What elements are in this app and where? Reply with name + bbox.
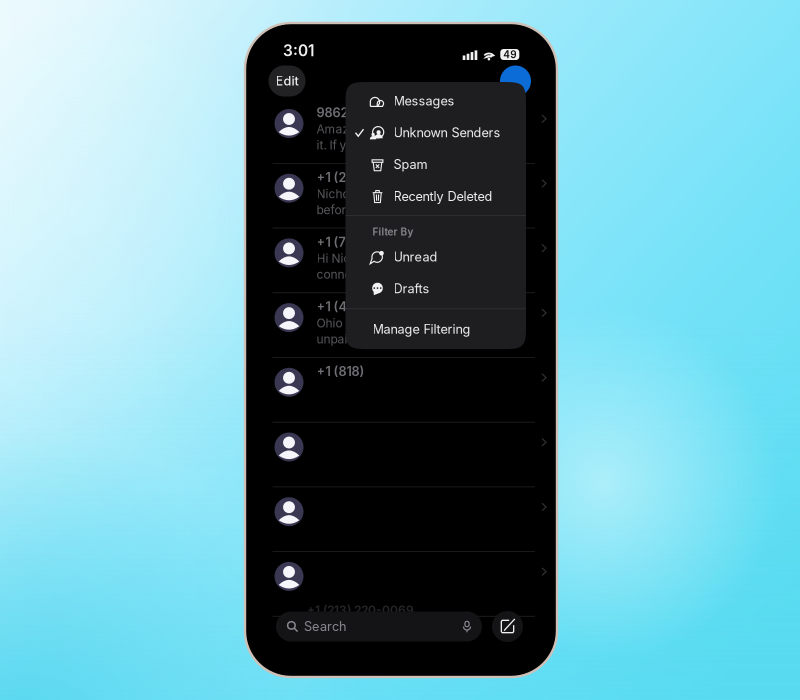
staticText: Amazon: (316, 122, 365, 136)
button[interactable]: Recently Deleted (345, 180, 526, 212)
button[interactable]: Unread (345, 241, 526, 273)
staticText: Recently Deleted (393, 189, 492, 204)
staticText: Ohio (316, 316, 342, 330)
button[interactable]: Edit (268, 65, 305, 96)
staticText: Drafts (393, 281, 429, 296)
staticText: 49 (503, 48, 516, 61)
button[interactable]: Manage Filtering (345, 309, 526, 349)
staticText: Nicholas (316, 186, 365, 201)
button[interactable] (245, 487, 557, 552)
button[interactable]: 98627 (245, 99, 557, 164)
staticText: Manage Filtering (372, 321, 470, 337)
staticText: +1 (213) (316, 170, 364, 185)
button[interactable] (245, 552, 557, 617)
button[interactable] (245, 422, 557, 487)
staticText: Search (304, 619, 346, 634)
staticText: Spam (393, 157, 427, 172)
button[interactable]: Filter (500, 65, 531, 96)
staticText: Hi Nick, (316, 251, 360, 266)
staticText: +1 (754) (316, 234, 366, 250)
button[interactable]: Search (276, 611, 482, 641)
staticText: unpaid (316, 332, 354, 346)
staticText: Unknown Senders (393, 125, 500, 140)
staticText: Your package has been (307, 619, 433, 633)
button[interactable]: +1 (754) (245, 228, 557, 293)
staticText: connect (316, 267, 362, 282)
staticText: +1 (818) (316, 364, 364, 379)
staticText: +1 (469) (316, 299, 367, 314)
button[interactable]: Messages (345, 85, 526, 117)
staticText: Messages (393, 93, 454, 108)
staticText: Edit (275, 73, 298, 89)
button[interactable]: Unknown Senders (345, 117, 526, 149)
button[interactable]: +1 (818) (245, 358, 557, 422)
staticText: Unread (393, 249, 437, 264)
staticText: before (316, 202, 352, 217)
staticText: +1 (213) 220-0069 (307, 603, 414, 617)
button[interactable]: Spam (345, 149, 526, 180)
button[interactable]: Compose (492, 611, 523, 642)
staticText: Filter By (372, 226, 413, 238)
staticText: it. If you (316, 138, 360, 152)
button[interactable]: +1 (469) (245, 293, 557, 358)
button[interactable]: Drafts (345, 273, 526, 304)
button[interactable]: +1 (213) (245, 164, 557, 228)
staticText: 98627 (316, 105, 355, 120)
staticText: 3:01 (283, 41, 314, 60)
